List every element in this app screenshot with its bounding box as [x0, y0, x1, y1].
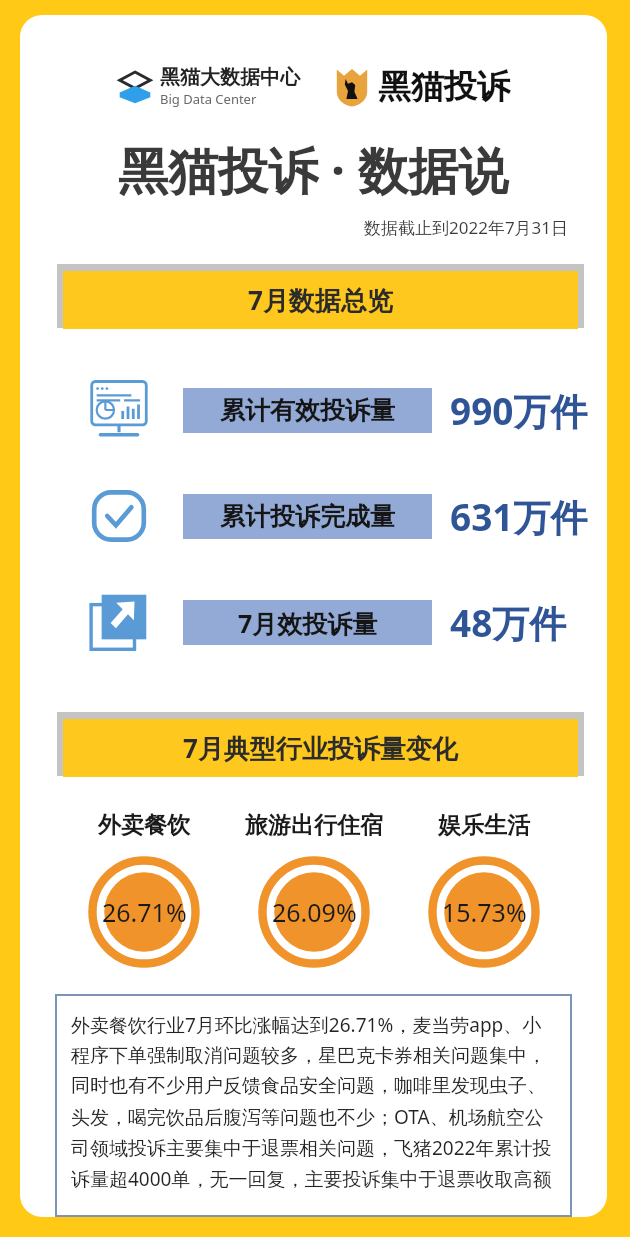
- staticText: 15.73%: [442, 895, 527, 929]
- staticText: 黑猫投诉 · 数据说: [118, 136, 509, 204]
- button[interactable]: 7月效投诉量图标: [20, 583, 607, 661]
- staticText: 累计有效投诉量: [220, 395, 395, 426]
- staticText: 7月数据总览: [248, 282, 393, 318]
- staticText: 631万件: [450, 491, 588, 542]
- staticText: 26.71%: [102, 895, 187, 929]
- other: 累计投诉完成量图标: [88, 485, 150, 547]
- staticText: Big Data Center: [160, 90, 257, 108]
- staticText: 990万件: [450, 385, 588, 436]
- staticText: 外卖餐饮行业7月环比涨幅达到26.71%，麦当劳app、小程序下单强制取消问题较…: [71, 1012, 556, 1199]
- staticText: 旅游出行住宿: [245, 811, 383, 840]
- staticText: 娱乐生活: [438, 811, 530, 840]
- staticText: 外卖餐饮: [98, 811, 190, 840]
- button[interactable]: 累计投诉完成量图标: [20, 477, 607, 555]
- staticText: 累计投诉完成量: [220, 501, 395, 532]
- staticText: 48万件: [450, 597, 567, 648]
- staticText: 黑猫大数据中心: [160, 65, 300, 90]
- staticText: 数据截止到2022年7月31日: [364, 216, 569, 239]
- other: 7月效投诉量图标: [88, 591, 150, 653]
- staticText: 7月效投诉量: [238, 606, 378, 640]
- button[interactable]: 累计有效投诉量图标: [20, 371, 607, 449]
- other: 累计有效投诉量图标: [88, 379, 150, 441]
- staticText: 26.09%: [272, 895, 357, 929]
- staticText: 7月典型行业投诉量变化: [183, 730, 458, 766]
- staticText: 黑猫投诉: [378, 66, 510, 108]
